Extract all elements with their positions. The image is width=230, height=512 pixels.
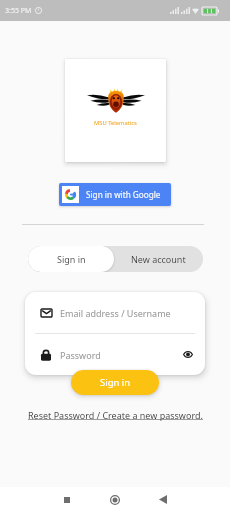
button[interactable]: New account (114, 246, 203, 272)
button[interactable]: Reset Password / Create a new password. (28, 409, 203, 421)
button[interactable]: Show password (181, 348, 194, 361)
staticText: Email address / Username (60, 307, 171, 319)
button[interactable]: Password (25, 334, 205, 375)
staticText: Password (60, 349, 101, 361)
staticText: Reset Password / Create a new password. (28, 409, 203, 421)
staticText: Sign in (100, 376, 131, 389)
staticText: MSU Telematics (94, 119, 137, 127)
button[interactable]: Home (106, 491, 123, 508)
button[interactable]: Sign in (28, 246, 114, 272)
staticText: New account (131, 253, 186, 265)
button[interactable]: Recents (58, 491, 75, 508)
button[interactable]: Back (154, 491, 171, 508)
staticText: 3:55 PM (5, 6, 32, 16)
staticText: Sign in with Google (86, 189, 161, 200)
button[interactable]: Email address / Username (25, 292, 205, 333)
button[interactable]: Sign in (71, 370, 159, 395)
staticText: Sign in (57, 253, 86, 265)
button[interactable]: Sign in with Google (59, 183, 171, 206)
